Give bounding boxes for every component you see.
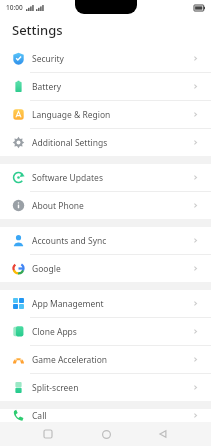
staticText: Settings: [12, 21, 63, 39]
staticText: Clone Apps: [32, 326, 77, 338]
staticText: 10:00: [6, 3, 23, 12]
staticText: Accounts and Sync: [32, 235, 107, 247]
staticText: Battery: [32, 81, 62, 93]
staticText: About Phone: [32, 200, 84, 212]
button[interactable]: Security: [0, 45, 211, 72]
staticText: App Management: [32, 298, 104, 310]
button[interactable]: Language & Region: [0, 101, 211, 128]
button[interactable]: Call: [0, 409, 211, 422]
staticText: Language & Region: [32, 109, 111, 121]
button[interactable]: Clone Apps: [0, 318, 211, 345]
button[interactable]: Game Acceleration: [0, 346, 211, 373]
button[interactable]: Accounts and Sync: [0, 227, 211, 254]
staticText: Software Updates: [32, 172, 103, 184]
button[interactable]: About Phone: [0, 192, 211, 219]
button[interactable]: Back: [153, 424, 173, 444]
button[interactable]: Software Updates: [0, 164, 211, 191]
button[interactable]: Recent apps: [38, 424, 58, 444]
button[interactable]: Additional Settings: [0, 129, 211, 156]
button[interactable]: App Management: [0, 290, 211, 317]
button[interactable]: Google: [0, 255, 211, 282]
button[interactable]: Home: [96, 424, 116, 444]
staticText: Security: [32, 53, 64, 65]
button[interactable]: Battery: [0, 73, 211, 100]
staticText: Additional Settings: [32, 137, 108, 149]
staticText: Game Acceleration: [32, 354, 108, 366]
staticText: Split-screen: [32, 382, 79, 394]
staticText: Call: [32, 410, 47, 422]
staticText: Google: [32, 263, 61, 275]
button[interactable]: Split-screen: [0, 374, 211, 401]
